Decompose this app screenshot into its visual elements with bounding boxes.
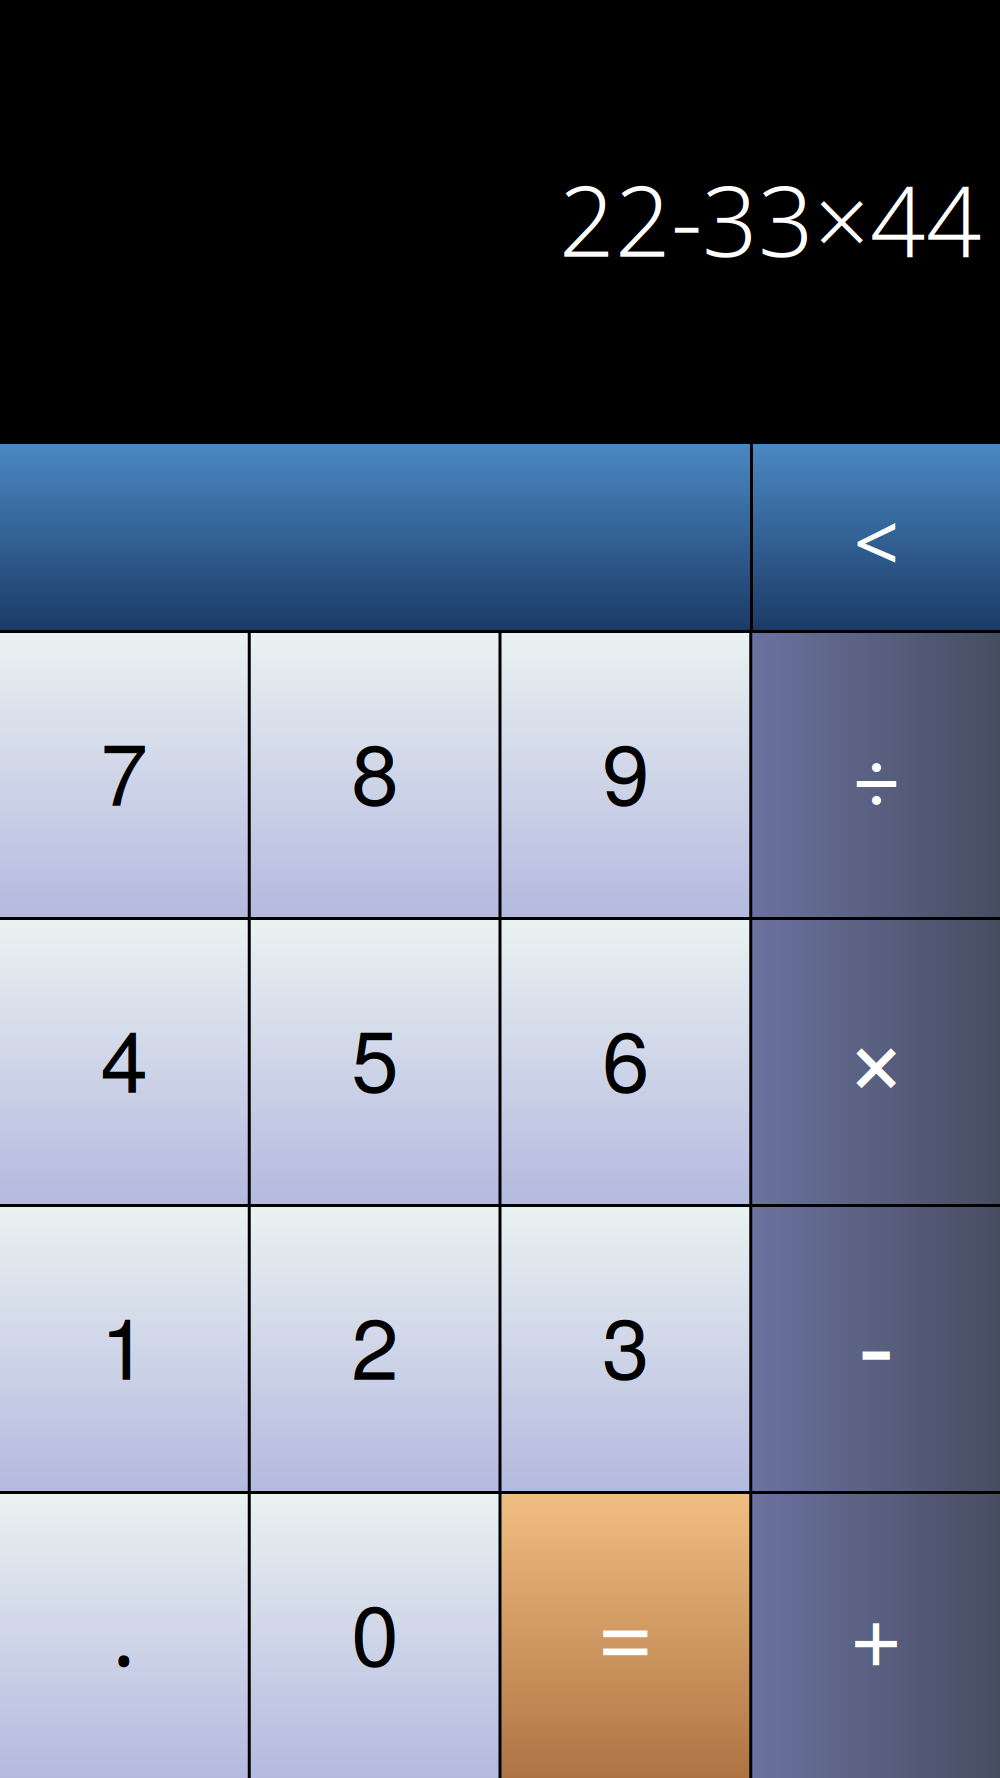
button[interactable]: Multiply: [752, 920, 1000, 1204]
button[interactable]: Divide: [752, 633, 1000, 917]
staticText: 6: [602, 995, 649, 1117]
button[interactable]: 0: [251, 1494, 499, 1778]
staticText: 2: [351, 1282, 398, 1404]
staticText: 8: [351, 708, 398, 830]
staticText: 9: [602, 708, 649, 830]
staticText: 5: [351, 995, 398, 1117]
button[interactable]: Backspace: [753, 444, 1000, 630]
button[interactable]: Equals: [501, 1494, 749, 1778]
staticText: ÷: [851, 705, 902, 831]
button[interactable]: 8: [251, 633, 499, 917]
button[interactable]: 3: [501, 1207, 749, 1491]
button[interactable]: 4: [0, 920, 248, 1204]
button[interactable]: .: [0, 1494, 248, 1778]
staticText: 7: [100, 708, 147, 830]
staticText: .: [112, 1574, 136, 1690]
button[interactable]: 1: [0, 1207, 248, 1491]
button[interactable]: 7: [0, 633, 248, 917]
button[interactable]: Add: [752, 1494, 1000, 1778]
staticText: 4: [100, 995, 147, 1117]
button[interactable]: Clear: [0, 444, 750, 630]
staticText: ×: [844, 970, 908, 1126]
button[interactable]: Subtract: [752, 1207, 1000, 1491]
button[interactable]: 9: [501, 633, 749, 917]
staticText: 3: [602, 1282, 649, 1404]
button[interactable]: 5: [251, 920, 499, 1204]
staticText: +: [849, 1560, 904, 1694]
button[interactable]: 2: [251, 1207, 499, 1491]
button[interactable]: 6: [501, 920, 749, 1204]
staticText: 22-33×44: [559, 154, 982, 284]
staticText: 1: [100, 1282, 147, 1404]
staticText: =: [596, 1554, 654, 1696]
staticText: -: [857, 1256, 895, 1420]
staticText: 0: [351, 1569, 398, 1691]
staticText: <: [853, 488, 899, 594]
